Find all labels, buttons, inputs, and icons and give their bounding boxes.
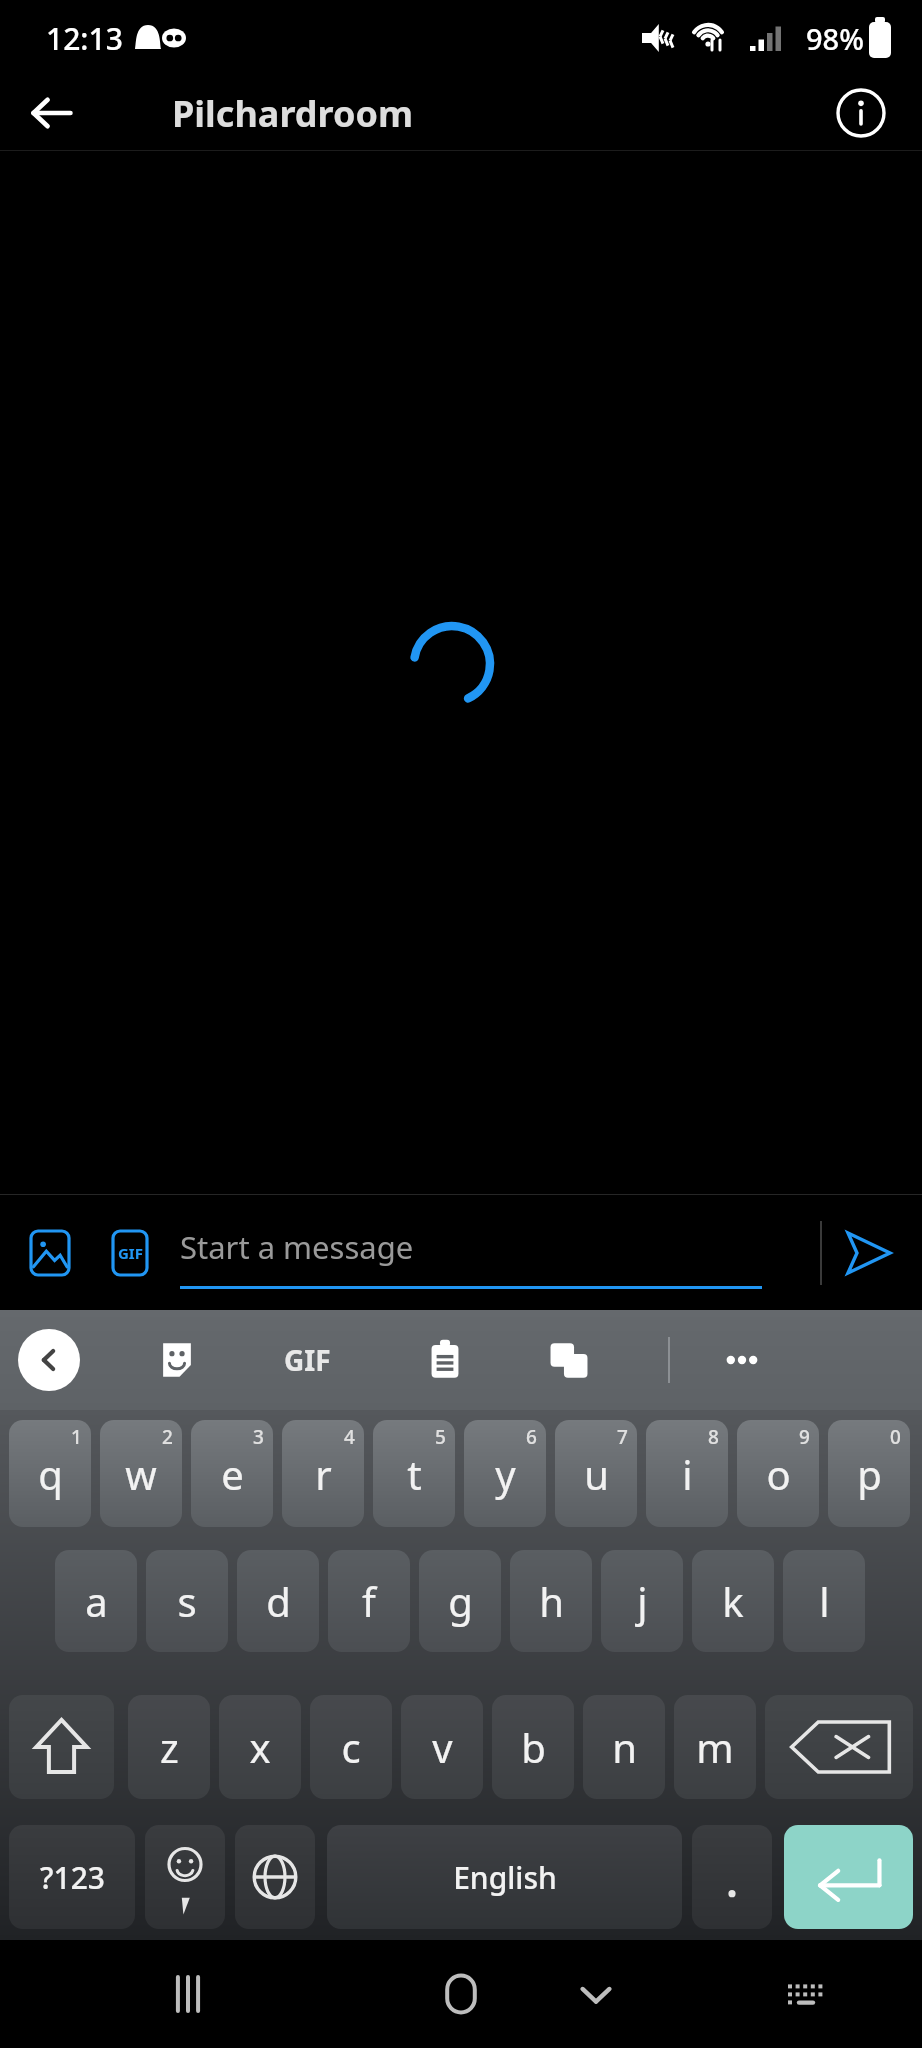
button[interactable]: u	[555, 1420, 637, 1527]
staticText: Start a message	[180, 1226, 414, 1268]
button[interactable]: ?123	[9, 1825, 135, 1929]
staticText: Pilchardroom	[172, 89, 413, 138]
button[interactable]: Send a GIF	[102, 1225, 158, 1281]
button[interactable]: Recent apps	[152, 1958, 224, 2030]
staticText: 1	[71, 1424, 82, 1450]
staticText: 7	[617, 1424, 628, 1450]
button[interactable]: e	[191, 1420, 273, 1527]
staticText: c	[341, 1720, 361, 1774]
button[interactable]: d	[237, 1550, 319, 1652]
staticText: 3	[253, 1424, 264, 1450]
button[interactable]: h	[510, 1550, 592, 1652]
button[interactable]: i	[646, 1420, 728, 1527]
button[interactable]: p	[828, 1420, 910, 1527]
button[interactable]: b	[492, 1695, 574, 1799]
staticText: n	[612, 1720, 637, 1774]
staticText: z	[160, 1720, 179, 1774]
staticText: r	[315, 1447, 332, 1501]
button[interactable]: l	[783, 1550, 865, 1652]
button[interactable]: Attach image	[22, 1225, 78, 1281]
button[interactable]: s	[146, 1550, 228, 1652]
staticText: 8	[708, 1424, 719, 1450]
button[interactable]: q	[9, 1420, 91, 1527]
staticText: 2	[162, 1424, 173, 1450]
button[interactable]: Hide keyboard	[560, 1958, 632, 2030]
staticText: 4	[344, 1424, 355, 1450]
button[interactable]: Change language	[235, 1825, 315, 1929]
staticText: m	[696, 1720, 734, 1774]
staticText: t	[407, 1447, 422, 1501]
button[interactable]: Emoji	[145, 1825, 225, 1929]
button[interactable]: Enter	[784, 1825, 913, 1929]
staticText: a	[85, 1574, 108, 1628]
staticText: b	[521, 1720, 546, 1774]
button[interactable]: n	[583, 1695, 665, 1799]
staticText: w	[125, 1447, 157, 1501]
staticText: ?123	[40, 1857, 105, 1898]
button[interactable]: c	[310, 1695, 392, 1799]
button[interactable]: GIF	[284, 1341, 331, 1379]
button[interactable]: English	[327, 1825, 682, 1929]
button[interactable]: j	[601, 1550, 683, 1652]
button[interactable]: Conversation info	[828, 80, 894, 146]
staticText: 5	[435, 1424, 446, 1450]
button[interactable]: f	[328, 1550, 410, 1652]
button[interactable]: m	[674, 1695, 756, 1799]
staticText: h	[539, 1574, 564, 1628]
staticText: p	[857, 1447, 882, 1501]
staticText: o	[766, 1447, 791, 1501]
staticText: 12:13	[46, 18, 123, 59]
staticText: 0	[890, 1424, 901, 1450]
button[interactable]: Switch keyboard	[768, 1958, 840, 2030]
staticText: y	[495, 1447, 516, 1501]
button[interactable]: t	[373, 1420, 455, 1527]
button[interactable]: Translate	[538, 1329, 600, 1391]
staticText: k	[722, 1574, 744, 1628]
button[interactable]: Shift	[9, 1695, 114, 1799]
button[interactable]: Stickers	[146, 1329, 208, 1391]
button[interactable]: Backspace	[765, 1695, 913, 1799]
staticText: q	[38, 1447, 63, 1501]
button[interactable]: g	[419, 1550, 501, 1652]
button[interactable]: w	[100, 1420, 182, 1527]
staticText: e	[221, 1447, 244, 1501]
staticText: g	[448, 1574, 473, 1628]
button[interactable]: Expand toolbar	[18, 1329, 80, 1391]
button[interactable]: More options	[712, 1330, 772, 1390]
staticText: 98%	[806, 19, 864, 58]
staticText: i	[682, 1447, 693, 1501]
staticText: j	[637, 1574, 648, 1628]
staticText: s	[177, 1574, 197, 1628]
staticText: GIF	[118, 1243, 143, 1263]
button[interactable]: Back	[18, 79, 86, 147]
staticText: x	[249, 1720, 271, 1774]
button[interactable]: k	[692, 1550, 774, 1652]
staticText: l	[819, 1574, 830, 1628]
button[interactable]: x	[219, 1695, 301, 1799]
staticText: d	[266, 1574, 291, 1628]
staticText: v	[432, 1720, 453, 1774]
button[interactable]: Clipboard	[414, 1329, 476, 1391]
button[interactable]: z	[128, 1695, 210, 1799]
button[interactable]: v	[401, 1695, 483, 1799]
button[interactable]: Period	[692, 1825, 772, 1929]
staticText: English	[453, 1857, 557, 1898]
button[interactable]: y	[464, 1420, 546, 1527]
button[interactable]: a	[55, 1550, 137, 1652]
staticText: 9	[799, 1424, 810, 1450]
staticText: f	[362, 1574, 376, 1628]
staticText: 6	[526, 1424, 537, 1450]
button[interactable]: Send	[834, 1219, 902, 1287]
button[interactable]: o	[737, 1420, 819, 1527]
button[interactable]: Home	[422, 1955, 500, 2033]
button[interactable]: r	[282, 1420, 364, 1527]
button[interactable]: Start a message	[180, 1209, 806, 1297]
staticText: u	[584, 1447, 609, 1501]
